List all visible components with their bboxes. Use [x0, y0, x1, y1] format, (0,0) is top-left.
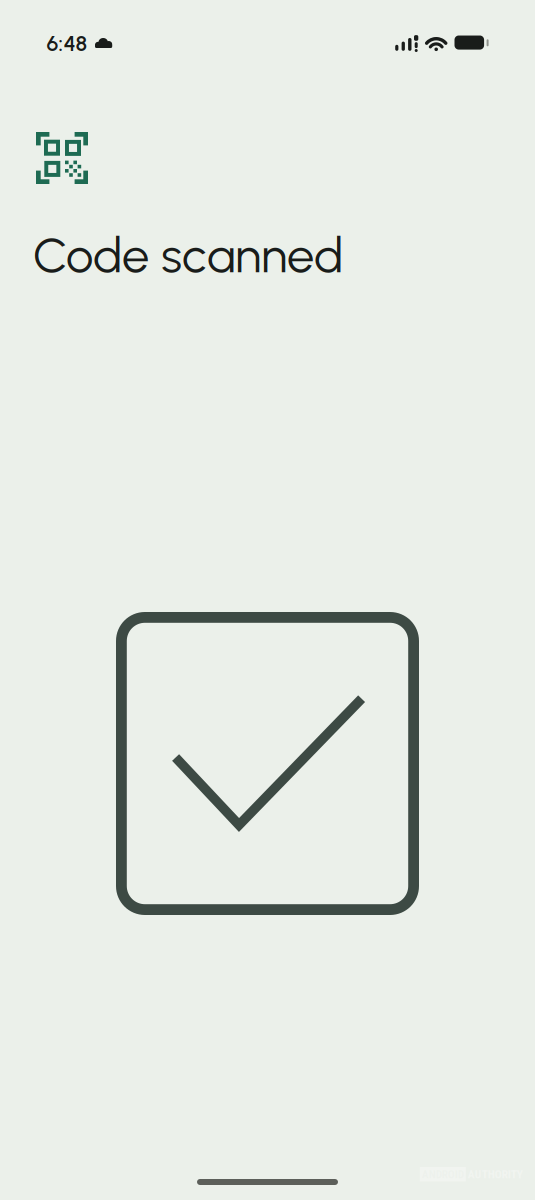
staticText: 6:48	[46, 30, 87, 56]
staticText: Code scanned	[33, 226, 343, 285]
